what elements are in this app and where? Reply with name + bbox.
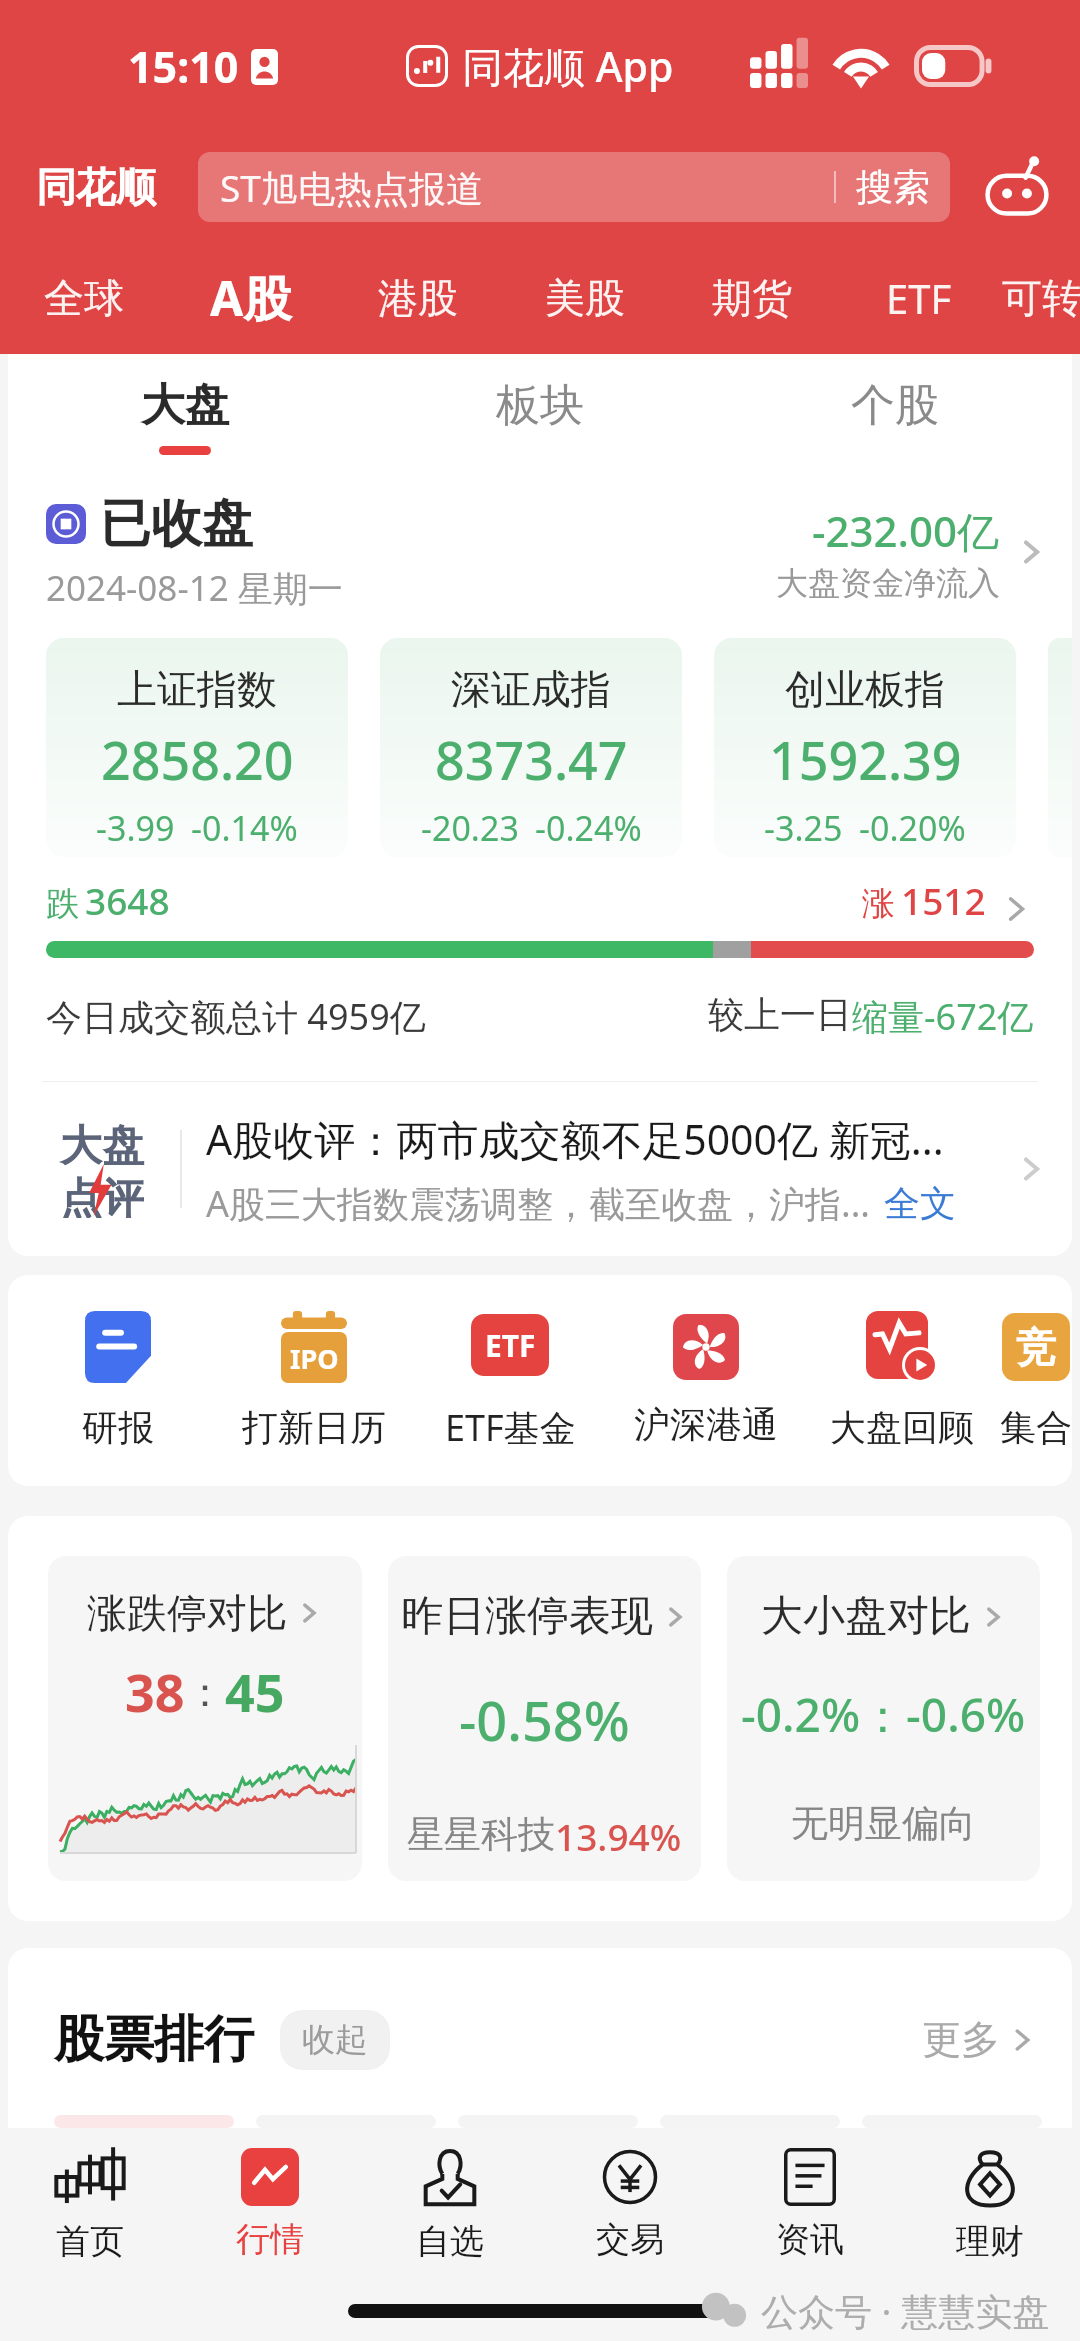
- staticText: -0.2%：-0.6%: [741, 1683, 1026, 1746]
- staticText: 大盘回顾: [830, 1405, 974, 1450]
- button[interactable]: IPO: [216, 1311, 412, 1450]
- button[interactable]: 已收盘: [8, 466, 1072, 616]
- staticText: 点评: [60, 1173, 144, 1218]
- staticText: 研报: [82, 1405, 154, 1450]
- staticText: 全文: [884, 1181, 956, 1226]
- button[interactable]: A股: [167, 242, 334, 354]
- button[interactable]: 大盘: [8, 354, 362, 466]
- staticText: 交易: [596, 2218, 664, 2261]
- staticText: 昨日涨停表现: [401, 1590, 653, 1643]
- staticText: ETF: [485, 1325, 536, 1366]
- staticText: 1592.39: [769, 724, 962, 795]
- staticText: 大小盘对比: [761, 1590, 971, 1643]
- staticText: 2024-08-12 星期一: [46, 564, 343, 612]
- staticText: 首页: [56, 2220, 124, 2263]
- staticText: 搜索: [856, 164, 930, 211]
- button[interactable]: 港股: [334, 242, 501, 354]
- staticText: 3648: [85, 875, 170, 925]
- staticText: -0.14%: [191, 805, 298, 851]
- staticText: ：: [185, 1667, 225, 1717]
- button[interactable]: 大小盘对比: [727, 1556, 1040, 1881]
- staticText: 同花顺 App: [462, 38, 674, 94]
- staticText: 38: [125, 1656, 185, 1727]
- staticText: 45: [225, 1656, 285, 1727]
- staticText: 集合竞价: [1000, 1405, 1072, 1450]
- staticText: 行情: [236, 2218, 304, 2261]
- staticText: 大盘资金净流入: [776, 563, 1000, 603]
- button[interactable]: ST旭电热点报道: [198, 152, 950, 222]
- button[interactable]: 研报: [20, 1311, 216, 1450]
- staticText: 收起: [302, 2019, 368, 2061]
- staticText: -0.20%: [859, 805, 966, 851]
- button[interactable]: 全球: [0, 242, 167, 354]
- button[interactable]: 涨跌停对比: [48, 1556, 362, 1881]
- button[interactable]: 沪深港通: [608, 1314, 804, 1447]
- staticText: A股: [210, 265, 292, 331]
- staticText: 15:10: [128, 37, 239, 96]
- button[interactable]: 创业板指: [714, 638, 1016, 857]
- staticText: 2858.20: [101, 724, 294, 795]
- button[interactable]: 理财: [900, 2128, 1080, 2280]
- staticText: -0.58%: [459, 1683, 630, 1757]
- staticText: 大盘: [141, 378, 229, 433]
- staticText: 竞: [1016, 1322, 1056, 1372]
- button[interactable]: 自选: [360, 2128, 540, 2280]
- staticText: 可转债: [1002, 273, 1080, 323]
- button[interactable]: 跌: [46, 875, 1034, 958]
- staticText: IPO: [290, 1340, 339, 1377]
- staticText: -3.99: [96, 805, 175, 851]
- staticText: 涨: [862, 883, 895, 925]
- staticText: 已收盘: [100, 492, 253, 556]
- button[interactable]: 首页: [0, 2128, 180, 2280]
- button[interactable]: 可转债: [1002, 242, 1080, 354]
- staticText: 期货: [712, 273, 792, 323]
- button[interactable]: 深证成指: [380, 638, 682, 857]
- button[interactable]: 昨日涨停表现: [388, 1556, 701, 1881]
- staticText: 板块: [496, 378, 584, 433]
- staticText: -3.25: [764, 805, 843, 851]
- button[interactable]: 更多: [922, 2015, 1038, 2064]
- button[interactable]: 交易: [540, 2128, 720, 2280]
- staticText: 资讯: [776, 2218, 844, 2261]
- button[interactable]: 资讯: [720, 2128, 900, 2280]
- button[interactable]: 板块: [362, 354, 717, 466]
- button[interactable]: ETF: [412, 1309, 608, 1452]
- button[interactable]: 期货: [668, 242, 835, 354]
- staticText: 全球: [44, 273, 124, 323]
- button[interactable]: ETF: [835, 242, 1002, 354]
- staticText: ST旭电热点报道: [220, 162, 834, 213]
- staticText: 自选: [416, 2220, 484, 2263]
- staticText: 同花顺: [36, 162, 156, 212]
- staticText: 13.94%: [555, 1811, 682, 1861]
- staticText: ETF基金: [445, 1403, 576, 1452]
- staticText: 1512: [901, 875, 986, 925]
- staticText: A股收评：两市成交额不足5000亿 新冠...: [206, 1111, 944, 1167]
- button[interactable]: 竞: [1000, 1311, 1072, 1450]
- staticText: 深证成指: [451, 664, 611, 714]
- button[interactable]: AI assistant: [976, 146, 1058, 228]
- staticText: 沪深港通: [634, 1402, 778, 1447]
- staticText: 星星科技: [407, 1811, 555, 1858]
- staticText: 较上一日: [708, 992, 852, 1037]
- button[interactable]: 上证指数: [46, 638, 348, 857]
- staticText: ETF: [886, 271, 952, 325]
- staticText: 股票排行: [54, 2008, 254, 2071]
- staticText: 港股: [378, 273, 458, 323]
- button[interactable]: 大盘: [8, 1082, 1072, 1256]
- button[interactable]: 美股: [501, 242, 668, 354]
- button[interactable]: 个股: [717, 354, 1072, 466]
- staticText: 跌: [46, 883, 79, 925]
- staticText: 缩量-672亿: [852, 992, 1034, 1041]
- button[interactable]: 大盘回顾: [804, 1311, 1000, 1450]
- staticText: 美股: [545, 273, 625, 323]
- staticText: 理财: [956, 2220, 1024, 2263]
- button[interactable]: 收起: [280, 2010, 390, 2070]
- staticText: -0.24%: [535, 805, 642, 851]
- staticText: 公众号 · 慧慧实盘: [761, 2285, 1050, 2336]
- button[interactable]: 行情: [180, 2128, 360, 2280]
